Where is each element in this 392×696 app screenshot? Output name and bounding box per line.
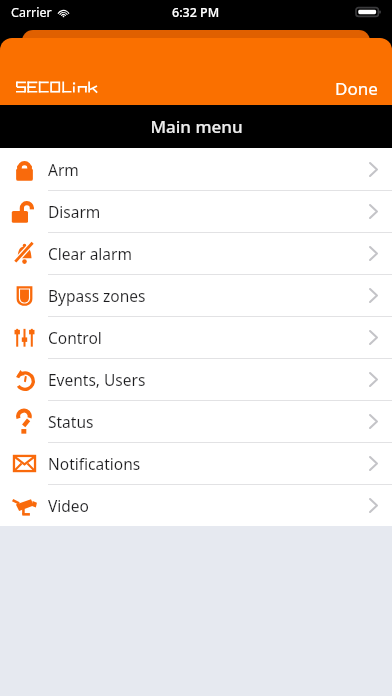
staticText: Done bbox=[335, 77, 378, 100]
button[interactable]: Done bbox=[321, 71, 392, 105]
button[interactable]: Notifications bbox=[0, 442, 392, 484]
button[interactable]: Video bbox=[0, 484, 392, 526]
staticText: Arm bbox=[48, 159, 79, 180]
button[interactable]: Bypass zones bbox=[0, 274, 392, 316]
staticText: Clear alarm bbox=[48, 243, 132, 264]
button[interactable]: Control bbox=[0, 316, 392, 358]
staticText: Video bbox=[48, 495, 89, 516]
staticText: Disarm bbox=[48, 201, 101, 222]
button[interactable]: Status bbox=[0, 400, 392, 442]
staticText: Carrier bbox=[11, 4, 52, 21]
button[interactable]: Disarm bbox=[0, 190, 392, 232]
staticText: Main menu bbox=[150, 115, 243, 138]
button[interactable]: Events, Users bbox=[0, 358, 392, 400]
staticText: Control bbox=[48, 327, 102, 348]
button[interactable]: Arm bbox=[0, 148, 392, 190]
staticText: Notifications bbox=[48, 453, 141, 474]
staticText: Status bbox=[48, 411, 94, 432]
staticText: 6:32 PM bbox=[172, 4, 220, 21]
staticText: Bypass zones bbox=[48, 285, 146, 306]
staticText: Events, Users bbox=[48, 369, 146, 390]
button[interactable]: Clear alarm bbox=[0, 232, 392, 274]
